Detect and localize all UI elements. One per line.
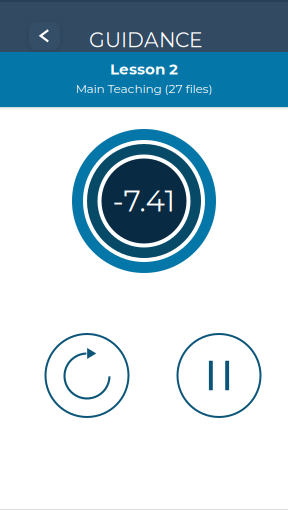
- button[interactable]: Back: [29, 22, 60, 50]
- staticText: -7.41: [112, 183, 175, 219]
- button[interactable]: Pause: [177, 334, 260, 417]
- staticText: Lesson 2: [110, 60, 178, 78]
- button[interactable]: Restart: [45, 334, 128, 417]
- staticText: Main Teaching (27 files): [75, 81, 212, 96]
- staticText: GUIDANCE: [89, 28, 203, 52]
